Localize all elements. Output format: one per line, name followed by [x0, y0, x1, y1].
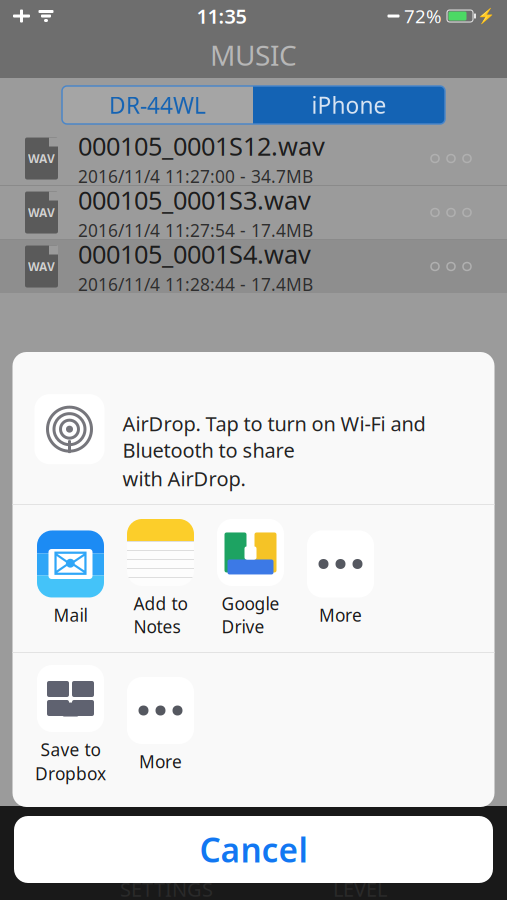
staticText: 2016/11/4 11:27:00 - 34.7MB [78, 165, 313, 188]
staticText: ✉ [51, 538, 89, 590]
staticText: Add to Notes [133, 592, 187, 638]
staticText: 2016/11/4 11:28:44 - 17.4MB [78, 273, 313, 296]
button[interactable]: AirDrop. Tap to turn on Wi-Fi and Blueto… [12, 352, 494, 504]
button[interactable]: ✉ [25, 530, 115, 626]
staticText: SETTINGS [120, 876, 213, 900]
staticText: 000105_0001S3.wav [78, 183, 311, 217]
staticText: AirDrop. Tap to turn on Wi-Fi and Blueto… [122, 410, 425, 463]
button[interactable]: Save to [25, 665, 115, 785]
staticText: DR-44WL [109, 90, 206, 120]
button[interactable]: WAV [0, 240, 507, 293]
button[interactable]: Google Drive [205, 519, 295, 638]
staticText: Save to [40, 738, 100, 761]
staticText: with AirDrop. [122, 465, 245, 492]
staticText: WAV [28, 258, 55, 274]
staticText: Dropbox [35, 762, 106, 785]
button[interactable]: More [295, 530, 385, 626]
button[interactable]: iPhone [253, 86, 445, 124]
staticText: WAV [28, 150, 55, 166]
staticText: Google Drive [221, 592, 279, 638]
staticText: More [319, 603, 362, 626]
button[interactable]: Cancel [14, 816, 493, 883]
staticText: Cancel [199, 827, 307, 872]
button[interactable]: DR-44WL [62, 86, 253, 124]
staticText: 000105_0001S4.wav [78, 237, 311, 271]
staticText: LEVEL [333, 876, 387, 900]
staticText: 000105_0001S12.wav [78, 129, 325, 163]
staticText: More [139, 750, 182, 773]
staticText: WAV [28, 204, 55, 220]
staticText: 72% [404, 4, 442, 28]
button[interactable]: Add to Notes [115, 519, 205, 638]
button[interactable]: WAV [0, 132, 507, 185]
button[interactable]: WAV [0, 186, 507, 239]
staticText: iPhone [311, 90, 386, 120]
staticText: MUSIC [210, 36, 297, 74]
staticText: 11:35 [196, 3, 246, 29]
staticText: ⚡ [477, 8, 495, 24]
staticText: 2016/11/4 11:27:54 - 17.4MB [78, 219, 313, 242]
button[interactable]: More [115, 677, 205, 773]
staticText: Mail [53, 603, 87, 626]
